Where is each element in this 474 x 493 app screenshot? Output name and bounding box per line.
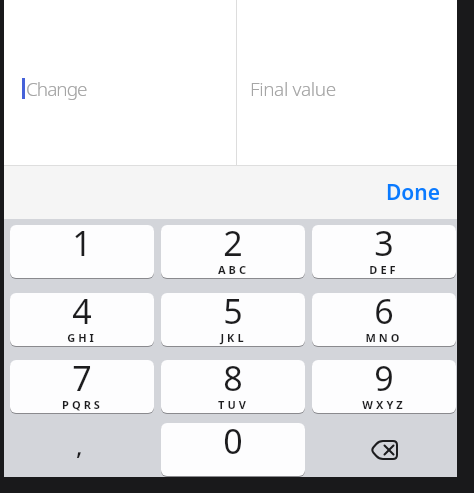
staticText: TUV	[218, 397, 249, 412]
button[interactable]: 6	[312, 293, 456, 346]
button[interactable]: 2	[161, 225, 305, 278]
staticText: PQRS	[62, 397, 103, 412]
button[interactable]: ,	[10, 423, 154, 476]
button[interactable]: 7	[10, 360, 154, 413]
staticText: Final value	[250, 76, 336, 102]
staticText: MNO	[365, 330, 403, 345]
button[interactable]: 9	[312, 360, 456, 413]
staticText: 5	[223, 293, 243, 334]
staticText: 3	[374, 225, 394, 266]
staticText: 4	[72, 293, 92, 334]
button[interactable]: Done	[386, 178, 441, 207]
staticText: WXYZ	[362, 397, 406, 412]
button[interactable]: 8	[161, 360, 305, 413]
button[interactable]	[312, 423, 456, 476]
button[interactable]: Final value	[237, 0, 457, 165]
staticText: ABC	[218, 262, 249, 277]
staticText: Change	[26, 76, 87, 102]
staticText: 6	[374, 293, 394, 334]
button[interactable]: 4	[10, 293, 154, 346]
staticText: 7	[72, 360, 92, 401]
staticText: DEF	[369, 262, 399, 277]
button[interactable]: 0	[161, 423, 305, 476]
staticText: 8	[223, 360, 243, 401]
staticText: 1	[72, 225, 92, 266]
staticText: 0	[223, 423, 243, 464]
staticText: ,	[76, 429, 83, 462]
staticText: JKL	[220, 330, 247, 345]
staticText: 2	[223, 225, 243, 266]
button[interactable]: 3	[312, 225, 456, 278]
staticText: 9	[374, 360, 394, 401]
button[interactable]: 5	[161, 293, 305, 346]
button[interactable]: Change	[4, 0, 236, 165]
staticText: GHI	[67, 330, 97, 345]
button[interactable]: 1	[10, 225, 154, 278]
staticText: Done	[386, 178, 441, 207]
